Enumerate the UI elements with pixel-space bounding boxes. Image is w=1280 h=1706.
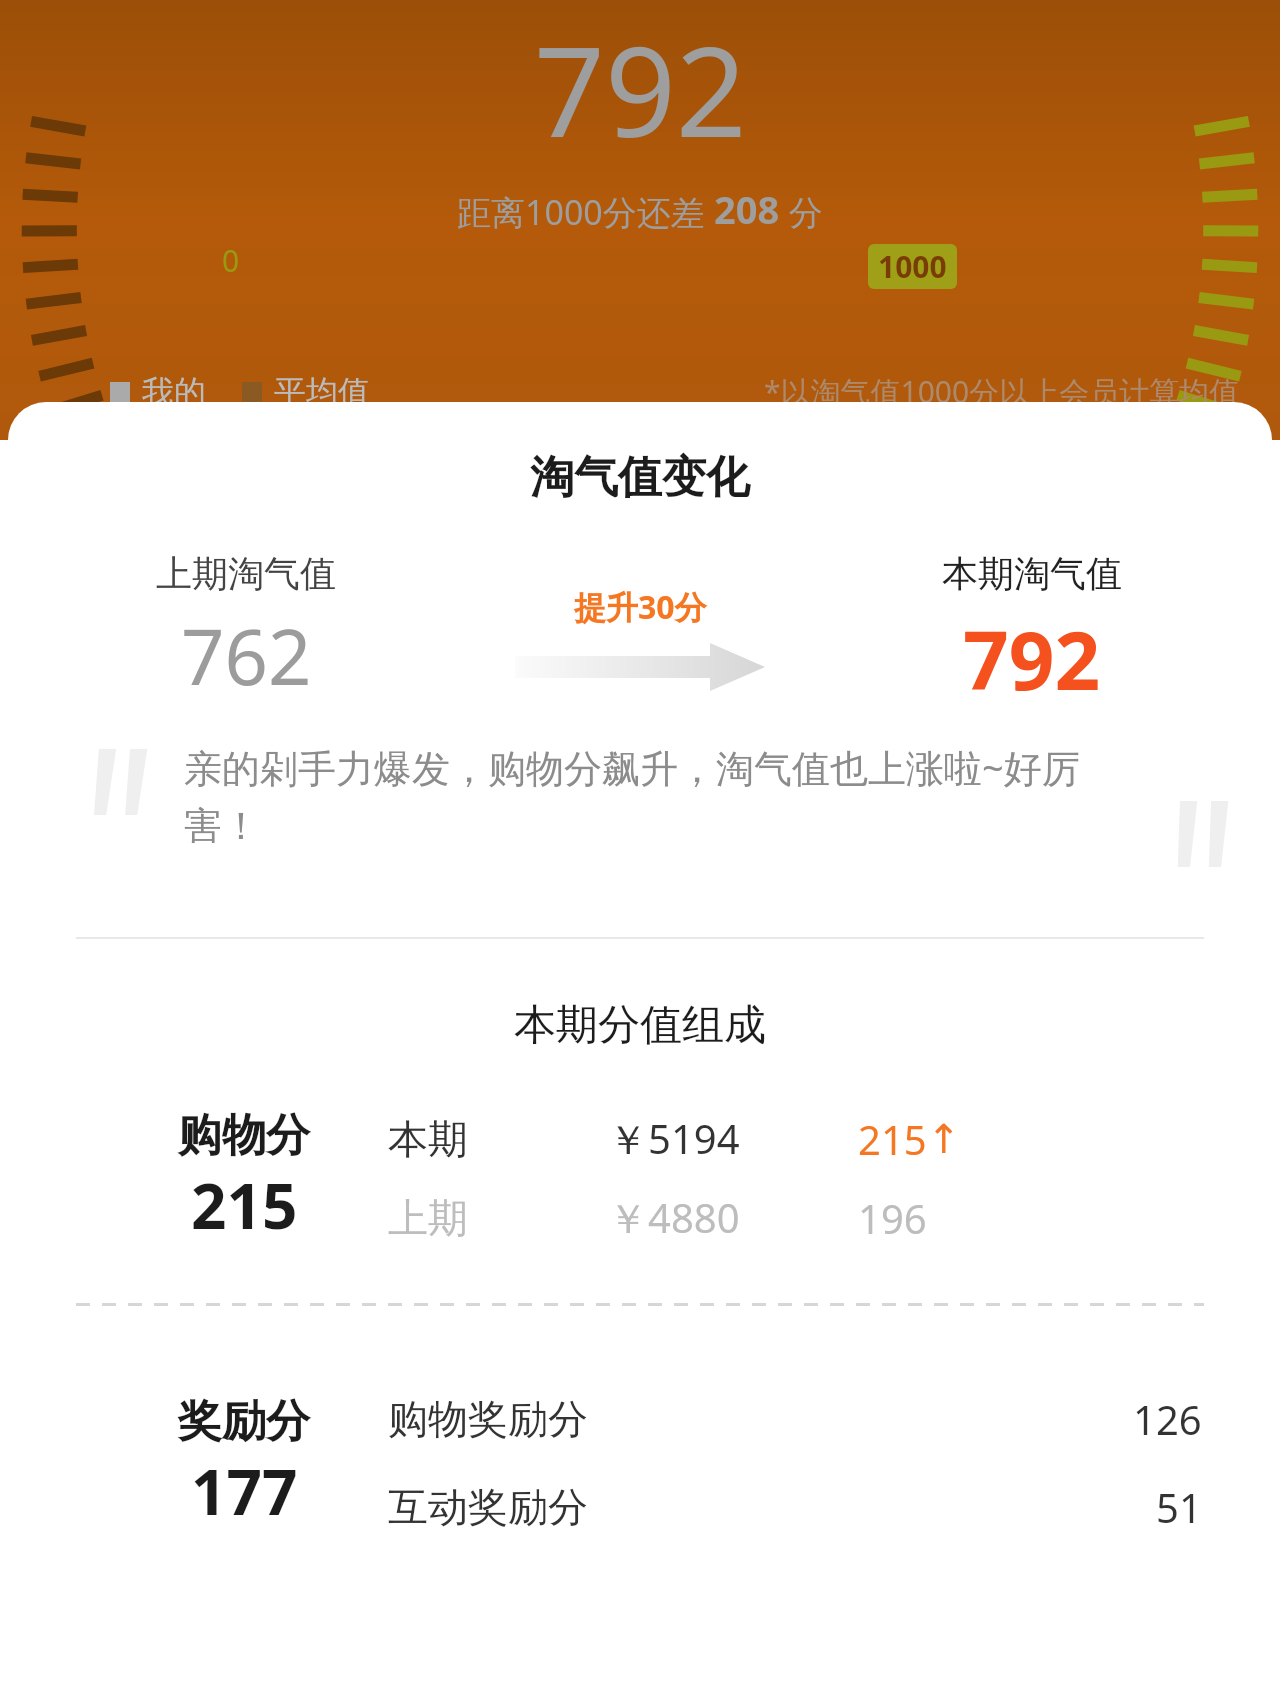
staticText: 上期 — [388, 1193, 608, 1243]
staticText: 奖励分 — [178, 1394, 310, 1449]
staticText: 互动奖励分 — [388, 1482, 1156, 1532]
staticText: 215 — [191, 1163, 298, 1247]
button[interactable]: 购物分 — [8, 1108, 1272, 1247]
staticText: 本期淘气值 — [942, 551, 1122, 596]
staticText: 126 — [1133, 1392, 1202, 1446]
staticText: 淘气值变化 — [8, 450, 1272, 505]
staticText: ￥4880 — [608, 1190, 858, 1245]
staticText: ￥5194 — [608, 1111, 858, 1166]
staticText: 提升30分 — [574, 585, 707, 629]
staticText: 792 — [963, 604, 1101, 713]
staticText: 平均值 — [274, 372, 370, 412]
staticText: 0 — [222, 240, 240, 281]
staticText: 距离1000分还差 — [457, 189, 714, 235]
staticText: 208 — [714, 183, 780, 235]
button[interactable]: 奖励分 — [8, 1392, 1272, 1534]
staticText: 792 — [534, 4, 747, 173]
staticText: 亲的剁手力爆发，购物分飙升，淘气值也上涨啦~好厉害！ — [184, 741, 1082, 851]
staticText: 购物分 — [178, 1108, 310, 1163]
staticText: 196 — [858, 1191, 927, 1245]
staticText: 51 — [1156, 1480, 1202, 1534]
staticText: 我的 — [142, 372, 206, 412]
staticText: 1000 — [878, 246, 947, 287]
staticText: 本期 — [388, 1114, 608, 1164]
staticText: 762 — [181, 604, 312, 708]
staticText: 177 — [191, 1449, 298, 1533]
staticText: 本期分值组成 — [8, 999, 1272, 1052]
staticText: 215 — [858, 1112, 927, 1166]
staticText: 购物奖励分 — [388, 1394, 1133, 1444]
staticText: *以淘气值1000分以上会员计算均值 — [764, 371, 1240, 412]
staticText: 分 — [780, 189, 823, 235]
staticText: 上期淘气值 — [156, 551, 336, 596]
staticText: ↑ — [927, 1116, 961, 1163]
